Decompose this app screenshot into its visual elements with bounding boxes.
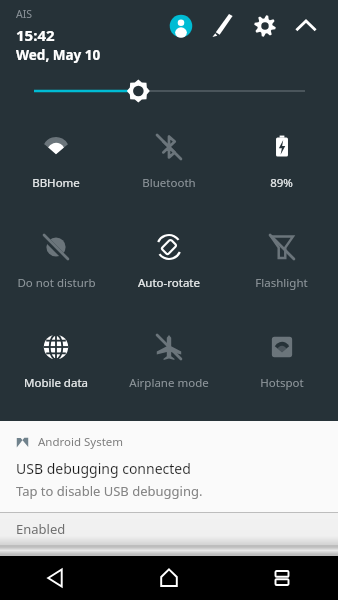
button[interactable]: Bluetooth: [112, 118, 225, 218]
staticText: 89%: [270, 175, 293, 191]
staticText: Enabled: [16, 520, 66, 538]
button[interactable]: Settings: [251, 12, 279, 40]
button[interactable]: Mobile data: [0, 318, 112, 418]
button[interactable]: Brightness: [0, 76, 338, 106]
staticText: Do not disturb: [17, 275, 96, 291]
button[interactable]: Enabled: [0, 513, 338, 545]
staticText: Hotspot: [260, 375, 304, 391]
staticText: AIS: [16, 7, 33, 21]
staticText: BBHome: [32, 175, 80, 191]
staticText: Mobile data: [24, 375, 88, 391]
staticText: Bluetooth: [142, 175, 196, 191]
button[interactable]: Recent apps: [225, 556, 338, 600]
button[interactable]: Flashlight: [225, 218, 338, 318]
button[interactable]: Airplane mode: [112, 318, 225, 418]
staticText: Android System: [38, 434, 124, 450]
staticText: Tap to disable USB debugging.: [16, 482, 203, 500]
staticText: Flashlight: [255, 275, 308, 291]
button[interactable]: Do not disturb: [0, 218, 112, 318]
button[interactable]: 89%: [225, 118, 338, 218]
button[interactable]: Account: [167, 12, 195, 40]
button[interactable]: Back: [0, 556, 112, 600]
button[interactable]: Auto-rotate: [112, 218, 225, 318]
button[interactable]: Hotspot: [225, 318, 338, 418]
staticText: USB debugging connected: [16, 459, 191, 478]
button[interactable]: Home: [112, 556, 225, 600]
staticText: Auto-rotate: [138, 275, 200, 291]
button[interactable]: Collapse: [292, 12, 320, 40]
button[interactable]: BBHome: [0, 118, 112, 218]
button[interactable]: Android System: [0, 421, 338, 512]
staticText: Wed, May 10: [16, 46, 101, 64]
button[interactable]: Edit: [209, 12, 237, 40]
staticText: 15:42: [16, 25, 55, 45]
staticText: Airplane mode: [129, 375, 209, 391]
